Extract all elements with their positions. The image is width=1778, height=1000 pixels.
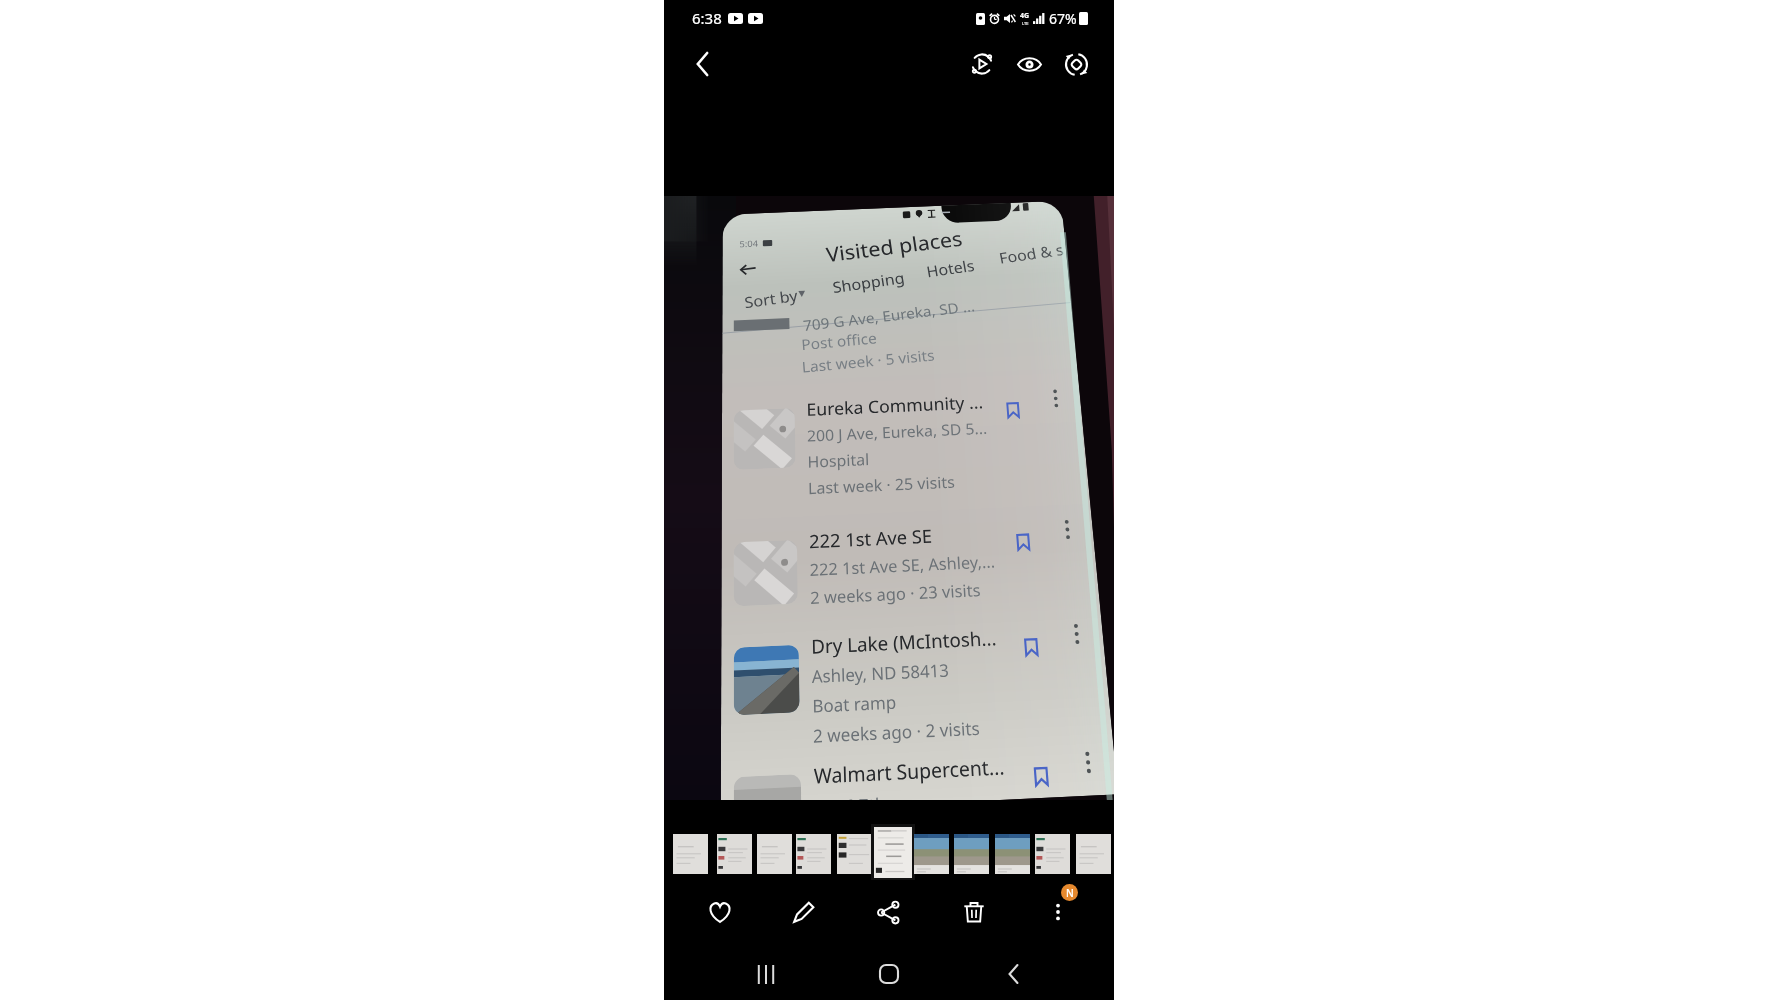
button[interactable]: Photo 11	[1076, 834, 1111, 874]
button[interactable]: Share	[867, 891, 909, 933]
button[interactable]: More options	[1037, 891, 1079, 933]
staticText: 2 weeks ago · 2 visits	[813, 716, 981, 748]
staticText: LTE	[1022, 21, 1029, 26]
button[interactable]: Photo 5	[837, 834, 872, 874]
staticText: 5:04	[739, 237, 758, 250]
staticText: 200 J Ave, Eureka, SD 5...	[807, 417, 988, 446]
button[interactable]: Recent apps	[744, 952, 788, 996]
button[interactable]: Save	[994, 392, 1031, 428]
button[interactable]: Photo 3	[757, 834, 792, 874]
button[interactable]: More options	[1059, 616, 1095, 652]
button[interactable]: Save	[1011, 627, 1051, 667]
button[interactable]: Motion photo	[964, 46, 1000, 82]
staticText: 6:38	[692, 8, 722, 28]
staticText: N	[1066, 886, 1074, 900]
staticText: Last week · 25 visits	[808, 471, 956, 499]
staticText: Ashley, ND 58413	[812, 658, 950, 688]
staticText: 4G	[1020, 11, 1030, 21]
button[interactable]: Rotate	[1058, 46, 1094, 82]
button[interactable]: Bixby Vision	[1011, 46, 1047, 82]
staticText: Food & s	[997, 239, 1066, 268]
button[interactable]: Home	[867, 952, 911, 996]
staticText: Dry Lake (McIntosh...	[811, 625, 998, 660]
button[interactable]: Photo 4	[796, 834, 831, 874]
button[interactable]: Delete	[953, 891, 995, 933]
button[interactable]: 222 1st Ave SE	[721, 504, 1100, 620]
staticText: 2 weeks ago · 23 visits	[810, 578, 982, 609]
staticText: Visited places	[824, 224, 965, 267]
staticText: 222 1st Ave SE	[809, 523, 933, 554]
button[interactable]: More options	[1039, 383, 1073, 414]
button[interactable]: Back	[684, 46, 720, 82]
staticText: Post office	[800, 328, 878, 355]
staticText: Sort by	[743, 285, 799, 313]
button[interactable]: Save	[1003, 523, 1042, 561]
button[interactable]: Back	[991, 952, 1035, 996]
button[interactable]: Edit	[783, 891, 825, 933]
button[interactable]: More options	[1050, 513, 1085, 546]
button[interactable]: Photo 1	[673, 834, 708, 874]
button[interactable]: Favorite	[699, 891, 741, 933]
staticText: 709 G Ave, Eureka, SD ...	[802, 296, 977, 336]
staticText: Last week · 5 visits	[801, 345, 936, 377]
button[interactable]: Selected photo	[871, 824, 915, 880]
staticText: 222 1st Ave SE, Ashley,...	[809, 550, 996, 581]
button[interactable]: Dry Lake (McIntosh...	[721, 607, 1110, 729]
button[interactable]: Eureka Community ...	[722, 375, 1087, 482]
staticText: 67%	[1049, 9, 1077, 28]
button[interactable]: Photo 10	[1035, 834, 1070, 874]
button[interactable]: Photo 9	[995, 834, 1030, 874]
staticText: Boat ramp	[812, 690, 898, 718]
staticText: Hotels	[925, 255, 977, 282]
button[interactable]: Photo 2	[717, 834, 752, 874]
staticText: Walmart Supercent...	[813, 753, 1005, 790]
button[interactable]: Save	[1020, 755, 1062, 798]
staticText: Eureka Community ...	[806, 390, 984, 422]
button[interactable]: Photo 7	[914, 834, 949, 874]
button[interactable]: More options	[1069, 743, 1107, 781]
staticText: Shopping	[831, 267, 907, 298]
staticText: 2936 7th ...	[814, 791, 905, 800]
button[interactable]: Photo 8	[954, 834, 989, 874]
staticText: Hospital	[807, 448, 870, 473]
button[interactable]: Walmart Supercent...	[721, 734, 1114, 800]
